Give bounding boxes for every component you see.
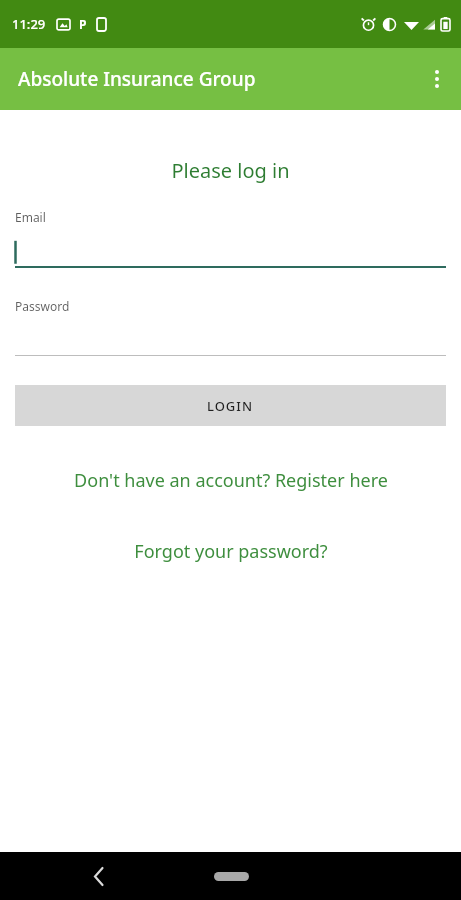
- staticText: P: [79, 16, 87, 32]
- staticText: Please log in: [0, 157, 461, 184]
- button[interactable]: Back: [78, 855, 120, 897]
- staticText: Password: [15, 298, 70, 314]
- button[interactable]: Forgot your password?: [0, 539, 461, 564]
- button[interactable]: Email: [0, 209, 461, 268]
- staticText: Don't have an account? Register here: [74, 468, 388, 493]
- staticText: 11:29: [12, 15, 46, 33]
- button[interactable]: More options: [413, 55, 461, 103]
- staticText: LOGIN: [207, 397, 254, 415]
- staticText: Email: [15, 209, 46, 225]
- button[interactable]: Don't have an account? Register here: [0, 468, 461, 493]
- staticText: Absolute Insurance Group: [18, 66, 256, 92]
- button[interactable]: Home: [201, 861, 261, 891]
- button[interactable]: Password: [0, 298, 461, 356]
- button[interactable]: LOGIN: [15, 385, 446, 426]
- staticText: Forgot your password?: [134, 539, 328, 564]
